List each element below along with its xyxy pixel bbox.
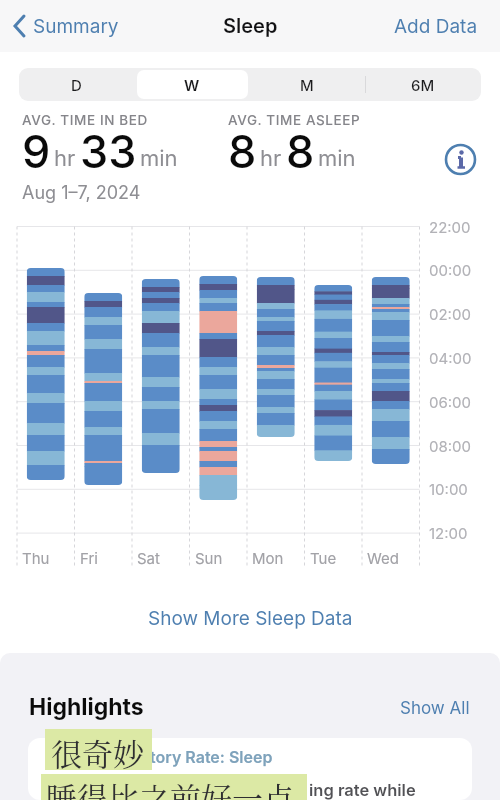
- staticText: Fri: [80, 549, 98, 567]
- staticText: 33: [80, 124, 137, 178]
- button[interactable]: Respiratory Rate: Sleep: [28, 738, 472, 800]
- staticText: min: [140, 145, 178, 172]
- staticText: Highlights: [29, 693, 144, 721]
- staticText: 8: [286, 124, 315, 178]
- staticText: Sun: [195, 549, 223, 567]
- staticText: 08:00: [429, 437, 471, 455]
- staticText: 10:00: [429, 480, 468, 498]
- button[interactable]: 6M: [365, 68, 481, 101]
- staticText: 02:00: [429, 305, 471, 323]
- staticText: W: [184, 76, 200, 94]
- staticText: M: [300, 76, 314, 94]
- staticText: hr: [260, 145, 282, 172]
- staticText: 6M: [411, 76, 435, 94]
- staticText: Show More Sleep Data: [148, 607, 353, 630]
- staticText: Sat: [137, 549, 160, 567]
- button[interactable]: Show All: [400, 698, 470, 719]
- button[interactable]: M: [249, 68, 365, 101]
- staticText: Sleep: [223, 14, 278, 38]
- staticText: ing rate while: [309, 780, 416, 800]
- staticText: 8: [228, 124, 257, 178]
- staticText: AVG. TIME IN BED: [22, 112, 148, 128]
- staticText: 06:00: [429, 393, 472, 411]
- staticText: Respiratory Rate: Sleep: [92, 747, 273, 766]
- button[interactable]: Show More Sleep Data: [148, 607, 353, 630]
- button[interactable]: Summary: [12, 14, 119, 38]
- staticText: 很奇妙: [51, 730, 144, 775]
- staticText: Tue: [310, 549, 337, 567]
- staticText: Wed: [367, 549, 399, 567]
- button[interactable]: D: [19, 68, 134, 101]
- staticText: min: [318, 145, 356, 172]
- staticText: 9: [22, 124, 51, 178]
- staticText: Mon: [252, 549, 284, 567]
- button[interactable]: Add Data: [394, 15, 478, 38]
- staticText: AVG. TIME ASLEEP: [228, 112, 361, 128]
- staticText: 22:00: [429, 218, 471, 236]
- staticText: 睡得比之前好一点: [46, 774, 294, 800]
- staticText: Thu: [22, 549, 50, 567]
- staticText: Aug 1–7, 2024: [22, 182, 141, 204]
- staticText: Show All: [400, 698, 470, 719]
- staticText: 00:00: [429, 261, 472, 279]
- staticText: 04:00: [429, 349, 472, 367]
- button[interactable]: W: [134, 68, 249, 101]
- staticText: Summary: [33, 15, 119, 38]
- button[interactable]: [444, 143, 477, 176]
- staticText: 12:00: [429, 524, 468, 542]
- staticText: hr: [54, 145, 76, 172]
- staticText: D: [71, 76, 82, 94]
- staticText: Add Data: [394, 15, 478, 38]
